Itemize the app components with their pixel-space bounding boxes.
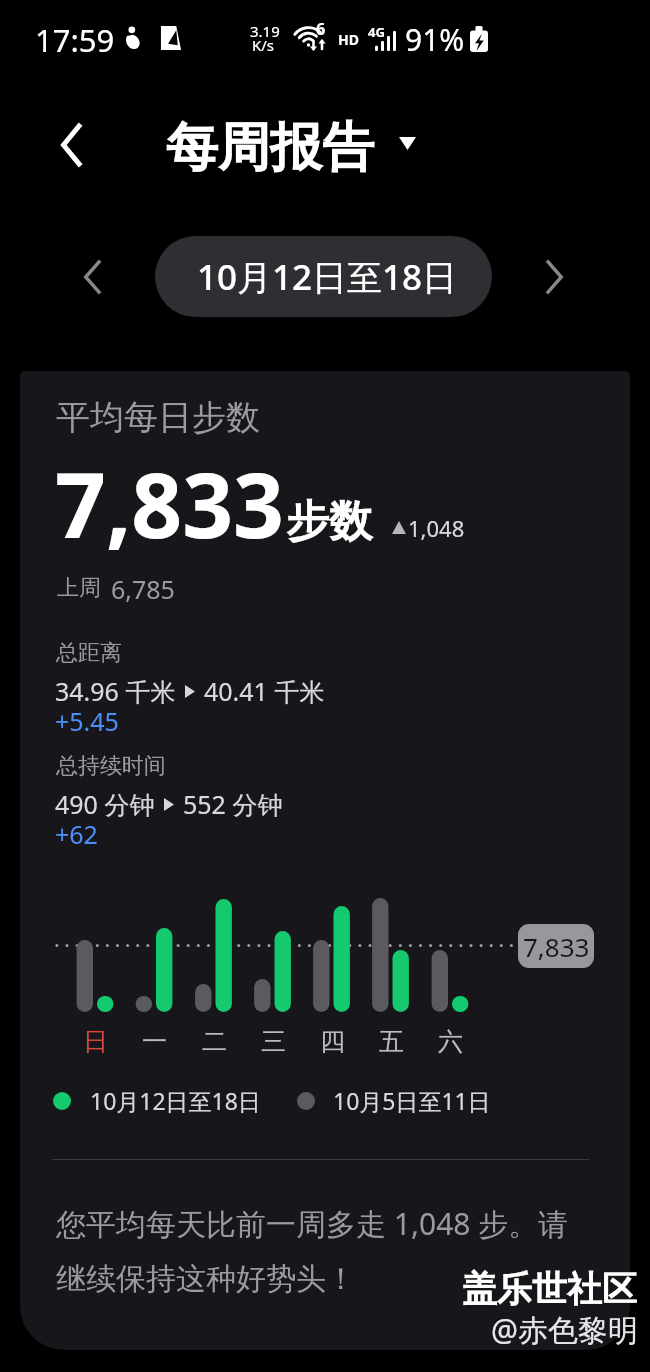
staticText: 三 bbox=[261, 1026, 286, 1057]
staticText: 五 bbox=[379, 1026, 404, 1057]
staticText: 34.96 千米 bbox=[55, 674, 176, 708]
staticText: 10月12日至18日 bbox=[197, 253, 458, 301]
staticText: 91% bbox=[405, 19, 465, 60]
staticText: 二 bbox=[202, 1026, 227, 1057]
staticText: 6,785 bbox=[111, 572, 175, 606]
staticText: 40.41 千米 bbox=[204, 674, 325, 708]
staticText: 总距离 bbox=[56, 639, 122, 667]
staticText: 一 bbox=[142, 1026, 167, 1057]
staticText: 3.19 bbox=[250, 21, 280, 41]
staticText: 上周 bbox=[57, 574, 101, 602]
staticText: 日 bbox=[83, 1026, 108, 1057]
staticText: 17:59 bbox=[35, 19, 115, 61]
staticText: 6 bbox=[316, 18, 326, 40]
button[interactable]: Back bbox=[45, 119, 97, 171]
staticText: 4G bbox=[368, 23, 385, 41]
staticText: 7,833 bbox=[55, 443, 284, 564]
staticText: 六 bbox=[438, 1026, 463, 1057]
staticText: 7,833 bbox=[523, 929, 590, 964]
staticText: K/s bbox=[252, 35, 275, 55]
staticText: 四 bbox=[320, 1026, 345, 1057]
staticText: 您平均每天比前一周多走 1,048 步。请继续保持这种好势头！ bbox=[56, 1203, 586, 1298]
staticText: 10月12日至18日 bbox=[90, 1085, 261, 1116]
staticText: 总持续时间 bbox=[56, 752, 166, 780]
staticText: 盖乐世社区 bbox=[462, 1267, 637, 1311]
staticText: 1,048 bbox=[408, 513, 465, 543]
staticText: 每周报告 bbox=[166, 115, 374, 181]
staticText: 10月5日至11日 bbox=[333, 1085, 491, 1116]
staticText: @赤色黎明 bbox=[491, 1309, 638, 1350]
button[interactable]: 10月12日至18日 bbox=[155, 236, 492, 317]
staticText: HD bbox=[338, 30, 359, 49]
staticText: +62 bbox=[55, 817, 98, 851]
staticText: +5.45 bbox=[55, 704, 119, 738]
button[interactable]: 每周报告 bbox=[166, 115, 416, 181]
staticText: 490 分钟 bbox=[55, 787, 155, 821]
staticText: 552 分钟 bbox=[183, 787, 283, 821]
button[interactable]: Next week bbox=[530, 253, 578, 301]
staticText: 步数 bbox=[286, 495, 372, 549]
staticText: 平均每日步数 bbox=[56, 396, 260, 439]
button[interactable]: Previous week bbox=[68, 253, 116, 301]
